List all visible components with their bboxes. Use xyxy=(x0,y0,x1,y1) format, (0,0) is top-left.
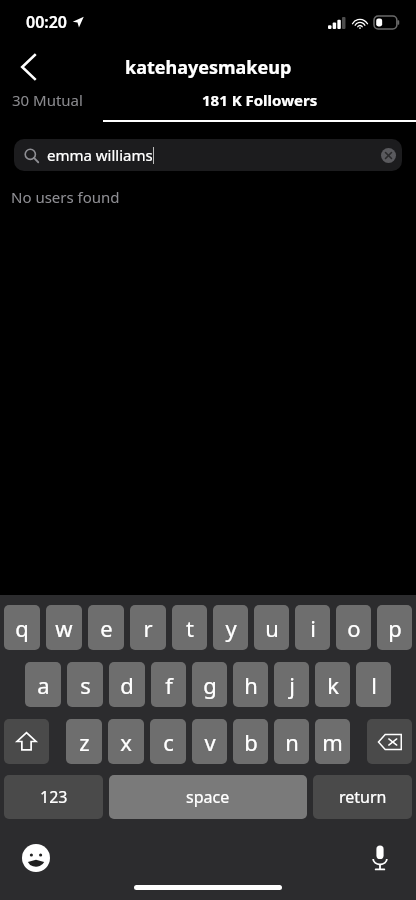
staticText: u xyxy=(265,613,279,643)
button[interactable]: 123 xyxy=(4,775,103,819)
staticText: a xyxy=(37,670,50,700)
button[interactable]: x xyxy=(108,719,144,764)
staticText: b xyxy=(244,727,258,757)
staticText: 30 Mutual xyxy=(12,90,83,110)
staticText: f xyxy=(165,670,173,700)
button[interactable]: n xyxy=(274,719,309,764)
staticText: emma williams xyxy=(47,145,153,165)
staticText: r xyxy=(143,613,153,643)
staticText: v xyxy=(204,727,216,757)
staticText: j xyxy=(289,670,295,700)
button[interactable]: g xyxy=(192,662,227,707)
button[interactable]: e xyxy=(88,605,124,650)
staticText: 123 xyxy=(40,786,68,808)
button[interactable]: t xyxy=(172,605,207,650)
button[interactable]: i xyxy=(295,605,330,650)
button[interactable]: k xyxy=(315,662,350,707)
button[interactable]: w xyxy=(46,605,82,650)
button[interactable]: p xyxy=(377,605,412,650)
staticText: o xyxy=(347,613,361,643)
staticText: No users found xyxy=(11,187,120,207)
button[interactable]: a xyxy=(25,662,61,707)
button[interactable]: Emoji keyboard xyxy=(16,838,56,878)
button[interactable]: space xyxy=(109,775,307,819)
button[interactable]: Clear text xyxy=(374,141,402,169)
staticText: g xyxy=(203,670,217,700)
button[interactable]: h xyxy=(233,662,268,707)
staticText: x xyxy=(120,727,132,757)
button[interactable]: b xyxy=(233,719,268,764)
staticText: c xyxy=(163,727,174,757)
staticText: space xyxy=(186,786,230,808)
staticText: e xyxy=(100,613,113,643)
button[interactable]: c xyxy=(150,719,186,764)
button[interactable]: r xyxy=(130,605,166,650)
staticText: q xyxy=(15,613,29,643)
button[interactable]: q xyxy=(4,605,40,650)
button[interactable]: u xyxy=(254,605,289,650)
button[interactable]: return xyxy=(313,775,412,819)
button[interactable]: z xyxy=(66,719,102,764)
staticText: k xyxy=(327,670,339,700)
staticText: h xyxy=(244,670,258,700)
staticText: d xyxy=(120,670,134,700)
staticText: l xyxy=(371,670,377,700)
button[interactable]: Shift xyxy=(4,719,49,764)
button[interactable]: emma williams xyxy=(14,139,402,171)
staticText: katehayesmakeup xyxy=(125,55,292,80)
button[interactable]: 30 Mutual xyxy=(12,90,83,110)
staticText: 181 K Followers xyxy=(202,90,318,110)
button[interactable]: Dictation xyxy=(360,838,400,878)
staticText: w xyxy=(55,613,73,643)
button[interactable]: v xyxy=(192,719,227,764)
button[interactable]: j xyxy=(274,662,309,707)
staticText: i xyxy=(310,613,316,643)
staticText: s xyxy=(80,670,91,700)
button[interactable]: s xyxy=(67,662,103,707)
staticText: z xyxy=(79,727,90,757)
staticText: t xyxy=(186,613,194,643)
button[interactable]: 181 K Followers xyxy=(103,90,416,122)
staticText: p xyxy=(388,613,402,643)
button[interactable]: l xyxy=(356,662,391,707)
button[interactable]: m xyxy=(315,719,350,764)
button[interactable]: Back xyxy=(8,47,48,87)
staticText: 00:20 xyxy=(26,11,68,33)
staticText: y xyxy=(225,613,237,643)
staticText: m xyxy=(322,727,343,757)
button[interactable]: y xyxy=(213,605,248,650)
staticText: return xyxy=(339,786,387,808)
button[interactable]: f xyxy=(151,662,186,707)
button[interactable]: d xyxy=(109,662,145,707)
button[interactable]: o xyxy=(336,605,371,650)
staticText: n xyxy=(285,727,299,757)
button[interactable]: Backspace xyxy=(367,719,412,764)
